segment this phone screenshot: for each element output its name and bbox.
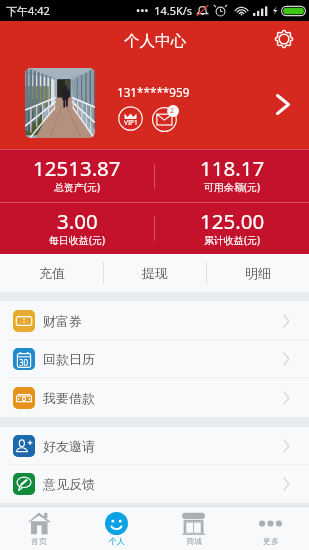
button[interactable]: 12513.87 [0,150,154,202]
button[interactable]: 首页 [0,507,78,550]
staticText: 财富券 [43,313,82,329]
staticText: 下午4:42 [6,3,50,18]
staticText: 回款日历 [43,351,95,367]
staticText: 118.17 [200,154,265,182]
button[interactable]: 好友邀请 [0,427,309,465]
staticText: 可用余额(元) [204,180,260,194]
button[interactable]: 更多 [232,507,309,550]
staticText: 2 [170,106,175,116]
button[interactable]: 提现 [104,254,206,292]
staticText: 131*****959 [117,84,190,100]
staticText: 提现 [142,265,168,281]
staticText: 3.00 [57,207,98,235]
button[interactable]: 财富券 [0,301,309,340]
staticText: 意见反馈 [43,476,95,492]
staticText: 好友邀请 [43,438,95,454]
button[interactable]: 125.00 [155,203,309,254]
button[interactable]: 明细 [207,254,309,292]
staticText: 我要借款 [43,390,95,406]
staticText: 每日收益(元) [49,233,105,247]
staticText: 充值 [39,265,65,281]
staticText: VIP1 [124,118,138,127]
staticText: 明细 [245,265,271,281]
staticText: 125.00 [200,207,265,235]
button[interactable]: Settings [270,25,298,53]
button[interactable]: 118.17 [155,150,309,202]
staticText: ••• 14.5K/s [136,3,193,18]
staticText: 累计收益(元) [204,233,260,247]
staticText: 个人中心 [124,31,186,51]
staticText: 个人 [109,536,125,546]
staticText: 30 [19,357,29,368]
button[interactable]: 个人 [78,507,155,550]
button[interactable]: 充值 [0,254,103,292]
button[interactable]: 意见反馈 [0,465,309,503]
staticText: 首页 [31,536,47,546]
button[interactable]: 商城 [155,507,232,550]
button[interactable]: 131*****959 [0,59,309,149]
button[interactable]: 30 [0,340,309,378]
staticText: 更多 [263,536,279,546]
other: Open profile [276,94,290,115]
staticText: 商城 [186,536,202,546]
staticText: 总资产(元) [54,180,100,194]
button[interactable]: 我要借款 [0,378,309,417]
button[interactable]: 3.00 [0,203,154,254]
staticText: 12513.87 [33,154,121,182]
